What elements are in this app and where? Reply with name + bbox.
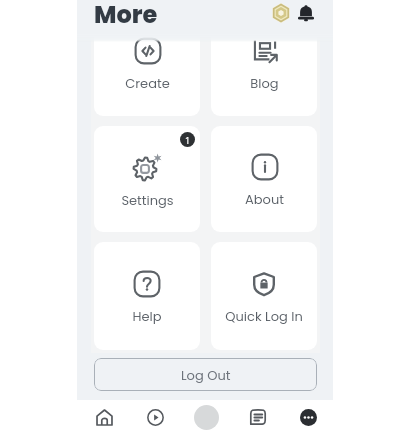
staticText: More: [94, 0, 158, 29]
button[interactable]: Notifications: [294, 1, 318, 25]
staticText: Quick Log In: [225, 307, 303, 325]
button[interactable]: Documents: [231, 400, 282, 430]
button[interactable]: Create: [94, 10, 200, 116]
button[interactable]: Log Out: [94, 358, 317, 391]
button[interactable]: Videos: [129, 400, 180, 430]
button[interactable]: Profile: [180, 400, 231, 430]
button[interactable]: Blog: [211, 10, 317, 116]
staticText: Create: [125, 74, 170, 92]
staticText: Log Out: [181, 366, 231, 384]
staticText: Settings: [121, 191, 174, 209]
button[interactable]: More: [282, 400, 333, 430]
staticText: 1: [185, 134, 191, 146]
button[interactable]: Settings: [94, 126, 200, 232]
button[interactable]: About: [211, 126, 317, 232]
button[interactable]: Help: [94, 242, 200, 350]
button[interactable]: Quick Log In: [211, 242, 317, 350]
button[interactable]: Rewards: [269, 1, 293, 25]
staticText: About: [245, 190, 284, 208]
staticText: Help: [132, 307, 162, 325]
staticText: Blog: [250, 74, 279, 92]
button[interactable]: Home: [77, 400, 129, 430]
